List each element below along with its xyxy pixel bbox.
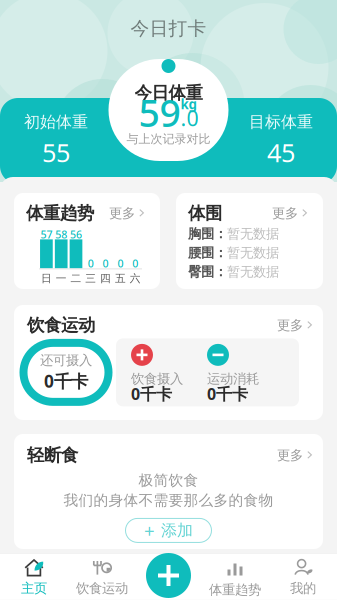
button[interactable]: 饮食运动 xyxy=(68,554,136,600)
staticText: 更多 xyxy=(272,205,298,221)
staticText: 体重趋势 xyxy=(209,581,261,598)
staticText: 0千卡 xyxy=(44,370,88,393)
staticText: 57 xyxy=(40,227,52,241)
staticText: 还可摄入 xyxy=(40,352,92,369)
staticText: 五 xyxy=(115,272,126,285)
button[interactable]: 更多 xyxy=(99,203,144,223)
staticText: 体重趋势 xyxy=(26,202,94,224)
button[interactable]: 体围 xyxy=(176,193,323,289)
staticText: 极简饮食 xyxy=(138,471,198,489)
staticText: + xyxy=(144,518,155,543)
staticText: 轻断食 xyxy=(27,444,78,466)
staticText: 更多 xyxy=(109,205,135,221)
staticText: 0 xyxy=(117,256,123,270)
staticText: 运动消耗 xyxy=(207,371,259,387)
staticText: 59 xyxy=(138,88,180,137)
staticText: 更多 xyxy=(277,317,303,333)
staticText: 四 xyxy=(100,272,111,285)
button[interactable]: 体重趋势 xyxy=(201,554,269,600)
staticText: 55 xyxy=(42,136,70,169)
button[interactable]: 我的 xyxy=(269,554,337,600)
staticText: 腰围： xyxy=(188,245,227,261)
staticText: 主页 xyxy=(21,580,47,596)
staticText: 58 xyxy=(55,227,67,241)
staticText: 六 xyxy=(130,272,141,285)
staticText: 初始体重 xyxy=(24,112,88,132)
staticText: 0 xyxy=(132,256,138,270)
staticText: 暂无数据 xyxy=(227,264,279,280)
staticText: 0 xyxy=(88,256,94,270)
button[interactable]: 主页 xyxy=(0,554,68,600)
staticText: 二 xyxy=(70,272,81,285)
staticText: 我们的身体不需要那么多的食物 xyxy=(63,491,273,509)
button[interactable]: + xyxy=(125,518,211,542)
staticText: 我的 xyxy=(290,580,316,596)
button[interactable]: 更多 xyxy=(267,445,312,465)
staticText: 胸围： xyxy=(188,226,227,242)
staticText: 暂无数据 xyxy=(227,226,279,242)
staticText: 一 xyxy=(56,272,67,285)
staticText: 饮食运动 xyxy=(76,580,128,596)
staticText: 45 xyxy=(267,136,295,169)
staticText: 0 xyxy=(103,256,109,270)
button[interactable]: 更多 xyxy=(267,315,312,335)
staticText: kg xyxy=(180,95,196,113)
staticText: 0千卡 xyxy=(131,383,172,404)
staticText: 添加 xyxy=(161,521,193,540)
staticText: 饮食运动 xyxy=(27,314,95,336)
staticText: 更多 xyxy=(277,447,303,463)
staticText: 今日打卡 xyxy=(130,17,206,40)
button[interactable]: 体重趋势 xyxy=(14,193,160,289)
staticText: 56 xyxy=(70,227,82,241)
staticText: 三 xyxy=(85,272,96,285)
staticText: 臀围： xyxy=(188,264,227,280)
staticText: .0 xyxy=(180,104,198,132)
staticText: 体围 xyxy=(188,202,222,224)
staticText: 0千卡 xyxy=(207,383,248,404)
staticText: 今日体重 xyxy=(134,82,202,104)
staticText: 目标体重 xyxy=(249,112,313,132)
staticText: 饮食摄入 xyxy=(131,371,183,387)
button[interactable]: 添加 xyxy=(146,553,191,598)
button[interactable]: 更多 xyxy=(262,203,307,223)
staticText: 暂无数据 xyxy=(227,245,279,261)
staticText: 日 xyxy=(41,272,52,285)
staticText: 与上次记录对比 xyxy=(126,132,210,146)
